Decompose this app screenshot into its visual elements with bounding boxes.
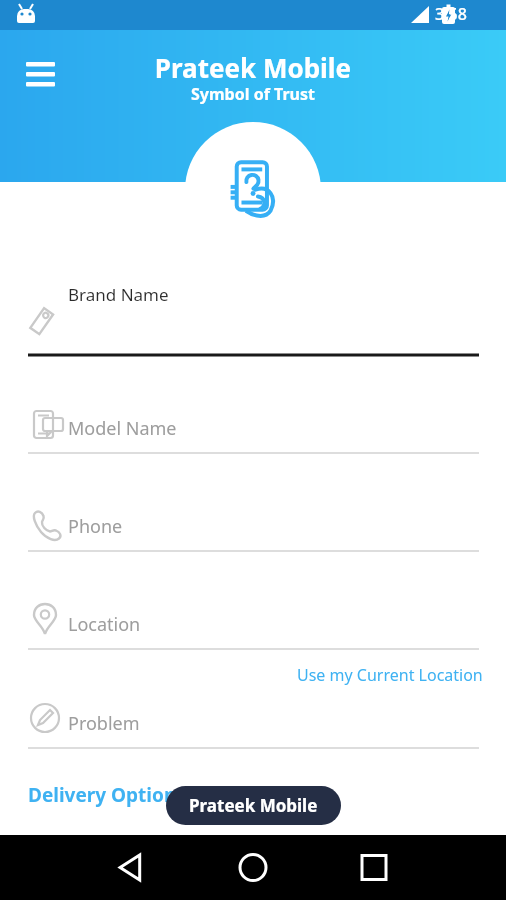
- staticText: Symbol of Trust: [0, 83, 506, 105]
- button[interactable]: Phone: [28, 497, 479, 553]
- staticText: Use my Current Location: [297, 664, 483, 686]
- staticText: Prateek Mobile: [189, 794, 318, 817]
- button[interactable]: Back: [96, 835, 168, 900]
- staticText: Problem: [68, 711, 140, 736]
- button[interactable]: Delivery Options: [28, 782, 186, 812]
- staticText: 3:58: [435, 3, 467, 25]
- staticText: Prateek Mobile: [0, 50, 506, 85]
- button[interactable]: Use my Current Location: [268, 661, 483, 689]
- button[interactable]: Problem: [28, 694, 479, 750]
- staticText: Delivery Options: [28, 782, 186, 808]
- staticText: Brand Name: [68, 283, 169, 306]
- button[interactable]: Recent apps: [338, 835, 410, 900]
- staticText: Location: [68, 612, 141, 637]
- staticText: Model Name: [68, 416, 177, 441]
- button[interactable]: Model Name: [28, 399, 479, 455]
- staticText: Phone: [68, 514, 123, 539]
- button[interactable]: [28, 300, 479, 358]
- button[interactable]: Open navigation menu: [18, 53, 62, 97]
- button[interactable]: Home: [217, 835, 289, 900]
- button[interactable]: Location: [28, 595, 479, 651]
